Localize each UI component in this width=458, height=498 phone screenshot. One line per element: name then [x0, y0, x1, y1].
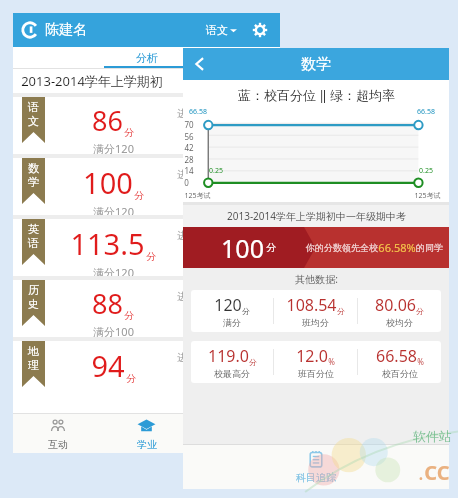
staticText: 错: [231, 438, 241, 451]
staticText: 66.58: [417, 107, 435, 117]
staticText: 史: [28, 297, 39, 311]
staticText: 2013-2014学年上学期初: [21, 72, 163, 90]
staticText: 满分: [223, 317, 241, 328]
staticText: .: [418, 459, 424, 486]
staticText: 语: [28, 100, 39, 114]
staticText: 的同学: [416, 242, 443, 253]
staticText: 0.25: [209, 166, 223, 176]
staticText: %: [417, 356, 424, 367]
staticText: 分: [134, 189, 144, 202]
staticText: 120: [214, 294, 242, 316]
staticText: 0: [184, 177, 189, 188]
button[interactable]: Logo: [21, 21, 39, 39]
staticText: 分: [124, 309, 134, 322]
staticText: 119.0: [208, 345, 249, 367]
staticText: 进退步: ·: [177, 228, 215, 242]
button[interactable]: 错: [191, 413, 280, 453]
button[interactable]: 119.0: [191, 341, 441, 383]
button[interactable]: 互动: [13, 413, 102, 453]
staticText: 0.25: [419, 166, 433, 176]
staticText: 66.58: [189, 107, 207, 117]
staticText: 分: [249, 357, 257, 367]
staticText: 66.58: [376, 345, 417, 367]
button[interactable]: Back: [187, 51, 213, 77]
staticText: 满分100: [93, 324, 134, 339]
button[interactable]: 语文: [203, 23, 240, 37]
staticText: 进退步: ·: [177, 289, 215, 303]
staticText: 125考试: [184, 191, 211, 201]
staticText: 2013-2014学年上学期初中一年级期中考: [227, 209, 406, 223]
staticText: 125考试: [414, 191, 441, 201]
staticText: 94: [91, 346, 125, 385]
staticText: 数学: [301, 55, 331, 74]
button[interactable]: 语: [13, 97, 280, 158]
staticText: 66.58%: [378, 240, 416, 255]
staticText: 分: [146, 250, 156, 263]
staticText: CC: [424, 459, 450, 486]
staticText: 分: [337, 306, 345, 316]
staticText: 分: [124, 126, 134, 139]
staticText: 28: [184, 154, 194, 165]
staticText: 语文: [206, 23, 228, 37]
staticText: 满分120: [93, 141, 134, 156]
staticText: 70: [184, 119, 194, 130]
staticText: 语: [28, 236, 39, 250]
button[interactable]: 数: [13, 158, 280, 219]
staticText: 42: [184, 142, 194, 153]
staticText: 80.06: [375, 294, 416, 316]
staticText: %: [328, 356, 335, 367]
staticText: 分: [266, 241, 276, 254]
staticText: 进退步: ·: [177, 167, 215, 181]
staticText: 学: [28, 175, 39, 189]
staticText: 校百分位: [382, 368, 418, 379]
staticText: 科目追踪: [296, 471, 336, 484]
staticText: 12.0: [296, 345, 328, 367]
staticText: 进退步: ·: [177, 350, 215, 364]
staticText: 分: [416, 306, 424, 316]
staticText: 分: [242, 306, 250, 316]
button[interactable]: Settings: [250, 20, 270, 40]
staticText: 满分120: [93, 204, 134, 219]
staticText: 你的分数领先全校: [306, 242, 378, 253]
staticText: 学业: [137, 438, 157, 451]
staticText: 100: [83, 163, 133, 202]
staticText: 分: [126, 372, 136, 385]
staticText: 数: [28, 161, 39, 175]
button[interactable]: 学业: [102, 413, 191, 453]
staticText: 理: [28, 358, 39, 372]
staticText: 软件站: [413, 428, 452, 444]
staticText: 英: [28, 222, 39, 236]
staticText: 蓝：校百分位 ‖ 绿：超均率: [238, 86, 395, 104]
button[interactable]: 历: [13, 280, 280, 341]
staticText: 113.5: [70, 224, 145, 263]
staticText: 班均分: [302, 317, 329, 328]
button[interactable]: 分析: [136, 51, 158, 65]
staticText: 其他数据:: [295, 272, 338, 286]
button[interactable]: 英: [13, 219, 280, 280]
staticText: 14: [184, 165, 194, 176]
staticText: 108.54: [286, 294, 337, 316]
staticText: 互动: [48, 438, 68, 451]
button[interactable]: 科目追踪: [261, 445, 371, 489]
staticText: 文: [28, 114, 39, 128]
staticText: 100: [221, 231, 264, 265]
staticText: 班百分位: [298, 368, 334, 379]
staticText: 历: [28, 283, 39, 297]
staticText: 满分120: [93, 265, 134, 280]
staticText: 86: [92, 102, 123, 139]
staticText: 56: [184, 131, 194, 142]
button[interactable]: 地: [13, 341, 280, 389]
staticText: 88: [92, 285, 123, 322]
staticText: 地: [28, 344, 39, 358]
staticText: 进退步: ·: [177, 106, 215, 120]
button[interactable]: 120: [191, 290, 441, 332]
staticText: 陈建名: [45, 21, 87, 39]
staticText: 校均分: [386, 317, 413, 328]
staticText: 分析: [136, 51, 158, 65]
staticText: 校最高分: [214, 368, 250, 379]
